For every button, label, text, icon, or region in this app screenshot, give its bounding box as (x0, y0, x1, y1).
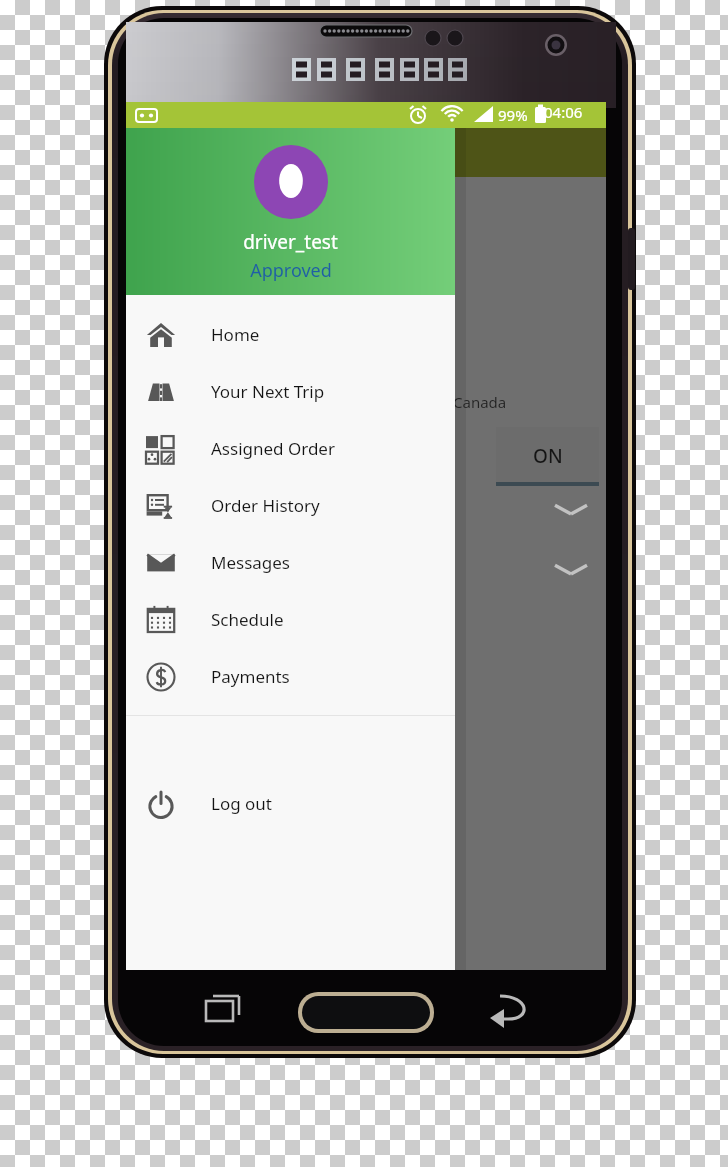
other: Schedule (146, 605, 176, 635)
button[interactable]: Payments (126, 648, 455, 705)
staticText: Home (211, 323, 260, 346)
button[interactable]: ON (496, 427, 599, 484)
staticText: Schedule (211, 608, 284, 631)
staticText: Canada (453, 392, 507, 412)
staticText: driver_test (243, 229, 338, 255)
other: Your Next Trip (146, 377, 176, 407)
other: Log out (146, 789, 176, 819)
staticText: Order History (211, 494, 320, 517)
button[interactable]: Home (126, 306, 455, 363)
button[interactable]: Order History (126, 477, 455, 534)
button[interactable]: driver_test (126, 128, 455, 295)
staticText: Payments (211, 665, 290, 688)
button[interactable]: Your Next Trip (126, 363, 455, 420)
other: Payments (146, 662, 176, 692)
button[interactable]: Schedule (126, 591, 455, 648)
staticText: Approved (250, 258, 332, 283)
button[interactable]: Assigned Order (126, 420, 455, 477)
button[interactable]: Messages (126, 534, 455, 591)
other: Home (146, 320, 176, 350)
button[interactable]: Log out (126, 775, 455, 832)
other: Order History (146, 491, 176, 521)
staticText: 04:06 PM (544, 102, 606, 128)
other: Assigned Order (146, 434, 176, 464)
staticText: Messages (211, 551, 291, 574)
staticText: ON (533, 443, 563, 469)
staticText: 99% (498, 105, 528, 125)
other: Messages (146, 548, 176, 578)
staticText: Log out (211, 792, 272, 815)
staticText: Assigned Order (211, 437, 335, 460)
staticText: Your Next Trip (211, 380, 325, 403)
